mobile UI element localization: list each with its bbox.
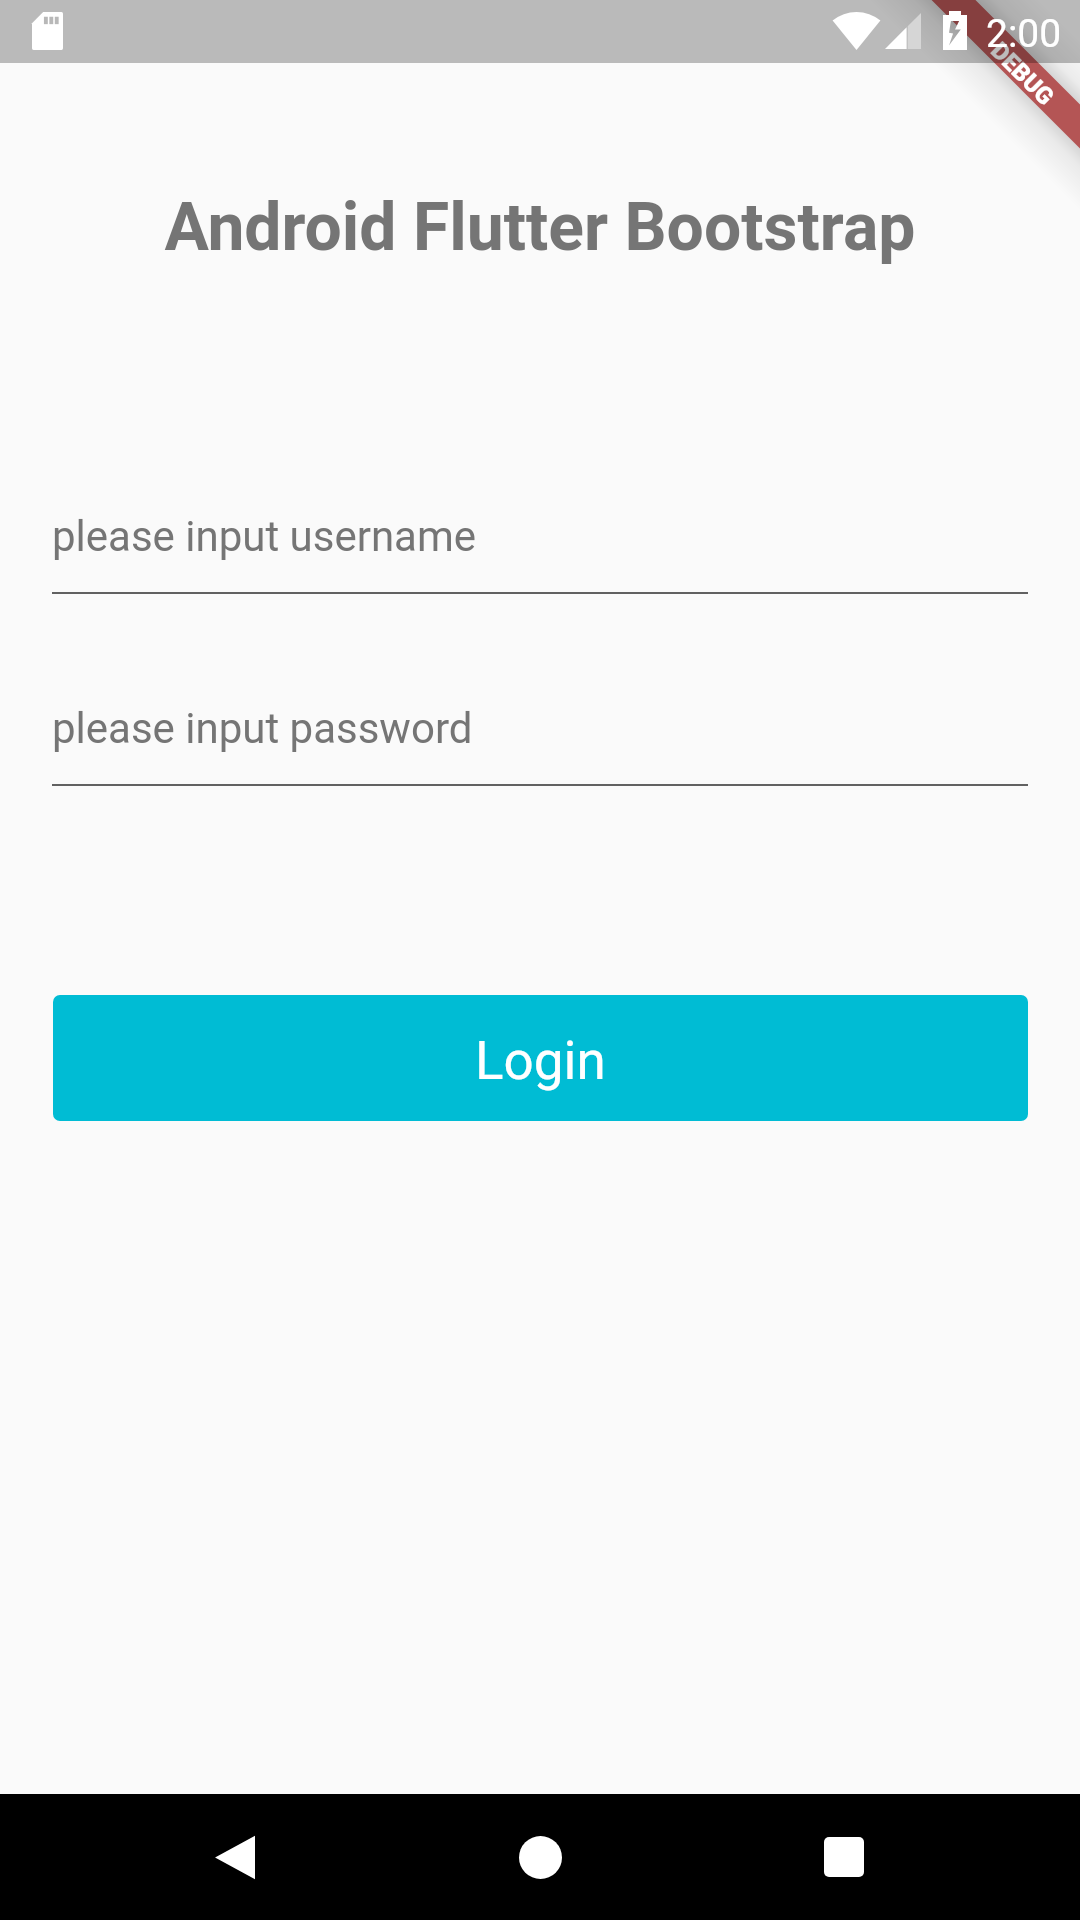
button[interactable]: please input password (52, 684, 1028, 786)
staticText: DEBUG (985, 37, 1059, 111)
button[interactable]: Recent apps (794, 1807, 894, 1907)
staticText: please input username (52, 512, 477, 561)
staticText: Android Flutter Bootstrap (0, 189, 1080, 266)
staticText: 2:00 (986, 11, 1062, 57)
button[interactable]: Back (186, 1807, 286, 1907)
staticText: Login (475, 1030, 606, 1092)
button[interactable]: please input username (52, 492, 1028, 594)
button[interactable]: Login (53, 995, 1028, 1121)
staticText: please input password (52, 704, 473, 753)
button[interactable]: Home (490, 1807, 590, 1907)
